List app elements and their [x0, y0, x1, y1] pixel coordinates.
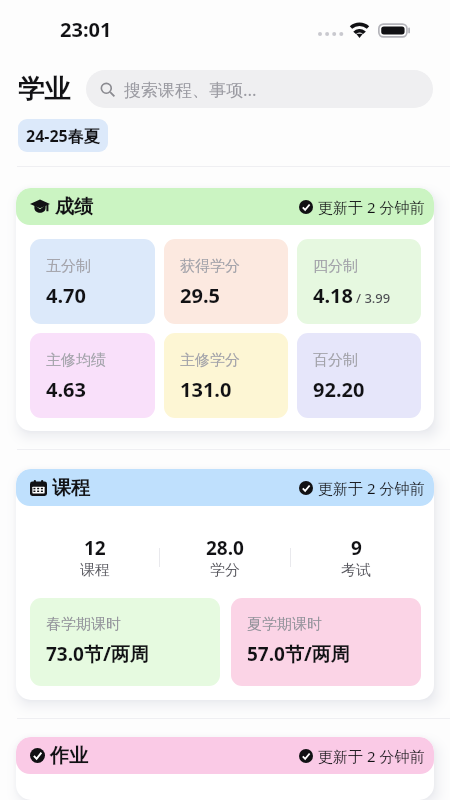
staticText: 4.70	[46, 282, 86, 309]
staticText: 百分制	[313, 351, 358, 370]
button[interactable]: 28.0	[160, 535, 290, 580]
staticText: 23:01	[60, 16, 112, 43]
button[interactable]: 五分制	[30, 239, 155, 324]
button[interactable]: 获得学分	[164, 239, 288, 324]
staticText: 更新于 2 分钟前	[318, 478, 425, 498]
button[interactable]: 百分制	[297, 333, 421, 418]
staticText: 主修均绩	[46, 351, 106, 370]
button[interactable]: 四分制	[297, 239, 421, 324]
staticText: 作业	[50, 744, 88, 768]
staticText: 获得学分	[180, 257, 240, 276]
staticText: 24-25春夏	[26, 125, 100, 147]
staticText: 搜索课程、事项...	[124, 78, 257, 101]
staticText: 92.20	[313, 376, 365, 403]
staticText: 四分制	[313, 257, 358, 276]
button[interactable]: 成绩	[16, 188, 434, 225]
staticText: 主修学分	[180, 351, 240, 370]
staticText: 更新于 2 分钟前	[318, 746, 425, 766]
staticText: 考试	[341, 561, 371, 580]
button[interactable]: 搜索课程、事项...	[86, 70, 433, 108]
staticText: 131.0	[180, 376, 232, 403]
staticText: 五分制	[46, 257, 91, 276]
staticText: 57.0节/两周	[247, 641, 350, 667]
staticText: / 3.99	[356, 289, 391, 307]
button[interactable]: 9	[291, 535, 421, 580]
staticText: 12	[84, 535, 106, 561]
staticText: 73.0节/两周	[46, 641, 149, 667]
staticText: 4.18	[313, 282, 353, 309]
button[interactable]: 作业	[16, 737, 434, 774]
staticText: 9	[351, 535, 362, 561]
button[interactable]: 主修学分	[164, 333, 288, 418]
button[interactable]: 夏学期课时	[231, 598, 421, 686]
staticText: 学业	[18, 73, 70, 106]
button[interactable]: 主修均绩	[30, 333, 155, 418]
staticText: 春学期课时	[46, 615, 121, 634]
staticText: 成绩	[55, 195, 93, 219]
staticText: 夏学期课时	[247, 615, 322, 634]
button[interactable]: 24-25春夏	[18, 119, 108, 152]
staticText: 4.63	[46, 376, 86, 403]
button[interactable]: 春学期课时	[30, 598, 220, 686]
staticText: 课程	[52, 476, 90, 500]
staticText: 课程	[80, 561, 110, 580]
button[interactable]: 课程	[16, 469, 434, 506]
staticText: 更新于 2 分钟前	[318, 197, 425, 217]
staticText: 29.5	[180, 282, 220, 309]
button[interactable]: 12	[30, 535, 159, 580]
staticText: 学分	[210, 561, 240, 580]
staticText: 28.0	[206, 535, 244, 561]
